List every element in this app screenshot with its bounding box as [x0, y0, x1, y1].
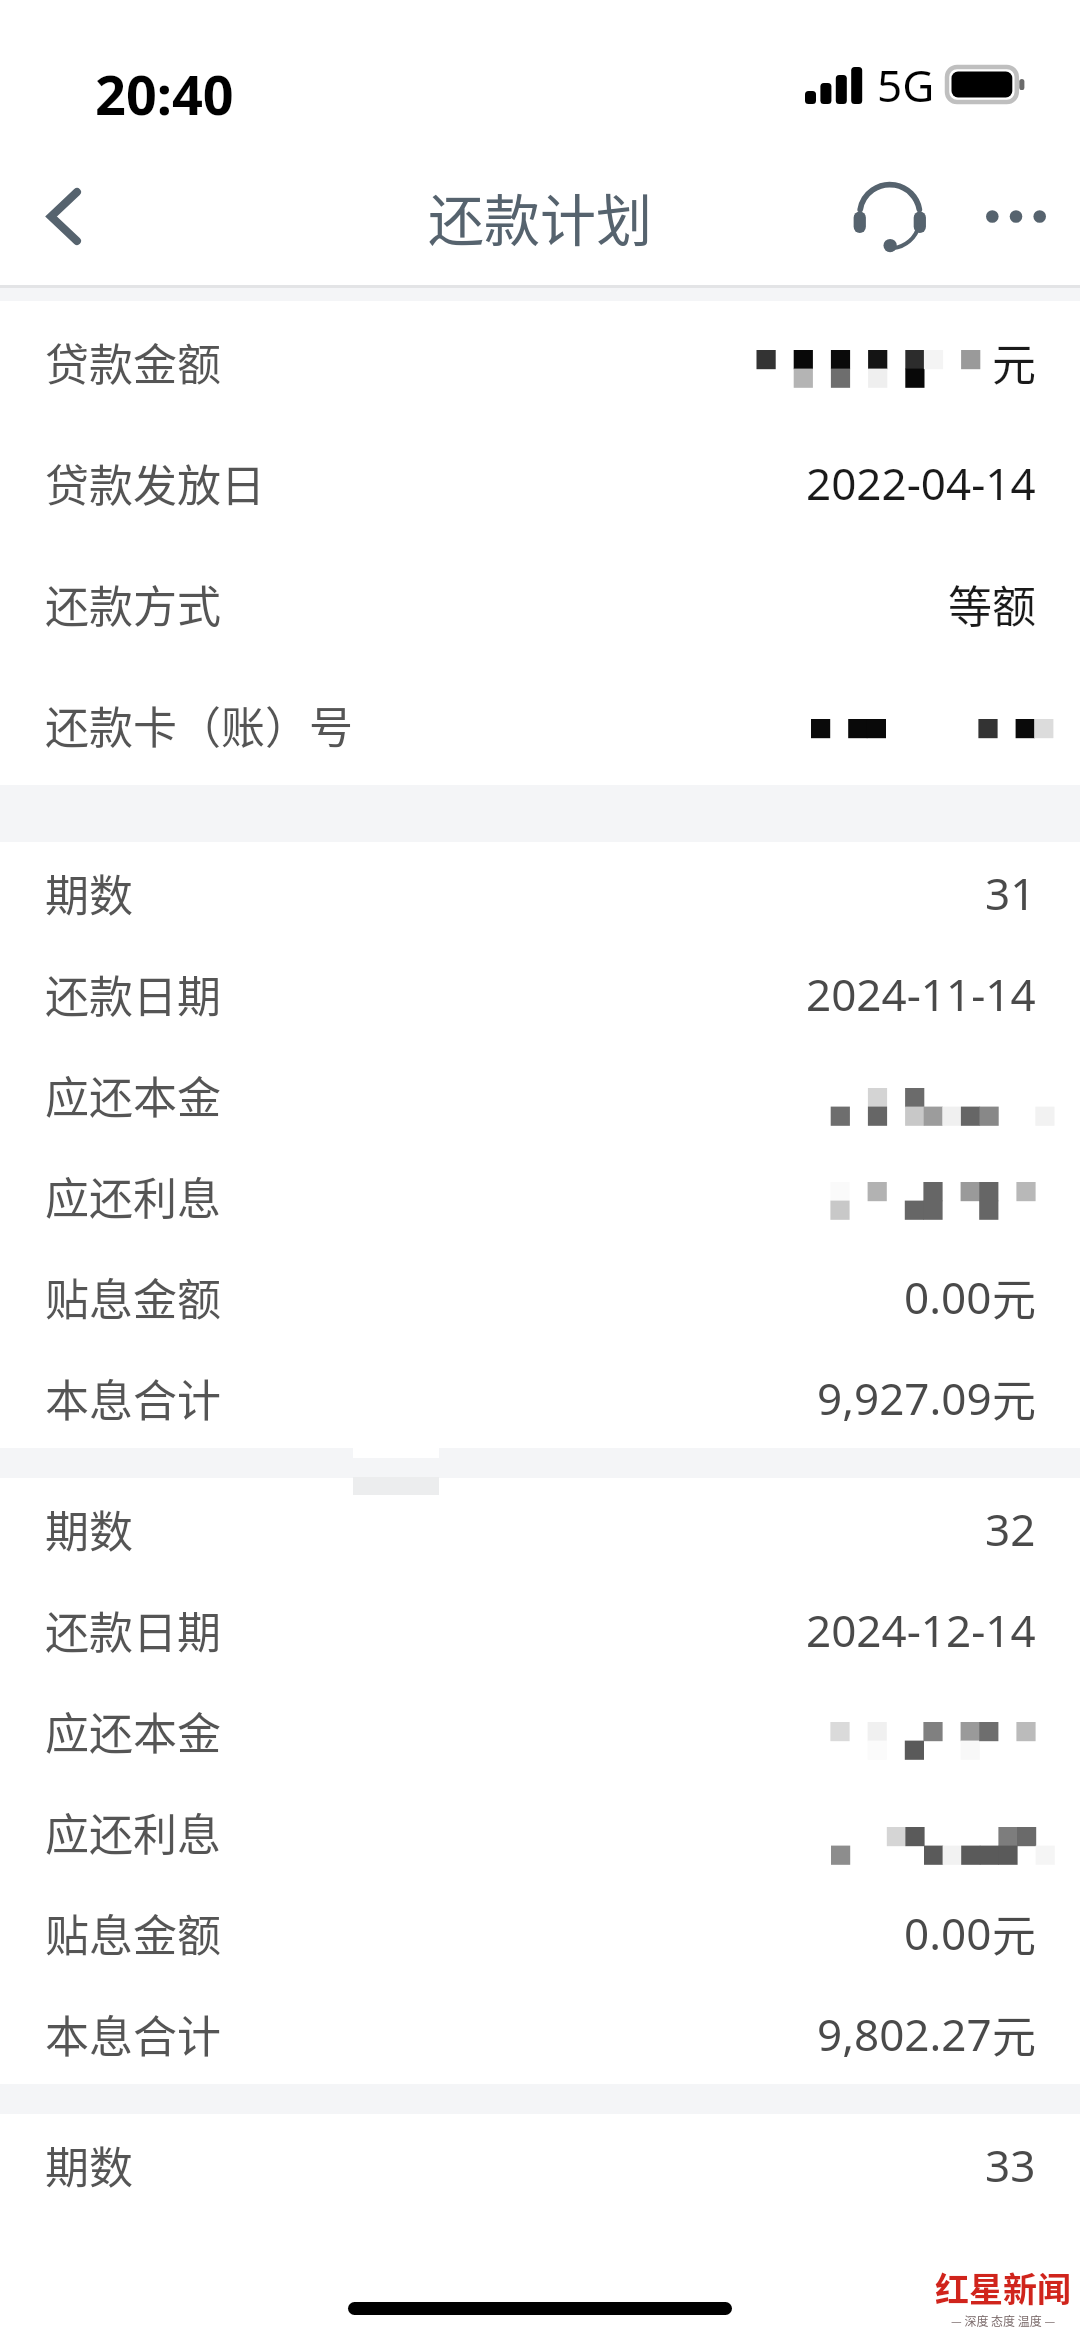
button[interactable]: 期数	[0, 842, 1080, 943]
staticText: 贴息金额	[45, 1265, 221, 1329]
button[interactable]: 贴息金额	[0, 1882, 1080, 1983]
button[interactable]: More options	[962, 150, 1070, 283]
button[interactable]: Back	[0, 150, 128, 283]
staticText: 还款日期	[45, 1598, 221, 1662]
staticText: 还款卡（账）号	[45, 693, 353, 757]
staticText: 期数	[45, 1497, 133, 1561]
staticText: 应还利息	[45, 1164, 221, 1228]
staticText: 31	[985, 863, 1036, 923]
staticText: 贴息金额	[45, 1901, 221, 1965]
button[interactable]: 应还利息	[0, 1781, 1080, 1882]
staticText: 元	[992, 330, 1036, 394]
staticText: 元	[992, 1265, 1036, 1329]
staticText: 应还本金	[45, 1063, 221, 1127]
staticText: 33	[985, 2135, 1036, 2195]
staticText: 2024-11-14	[806, 964, 1036, 1024]
staticText: 还款计划	[428, 176, 652, 257]
staticText: 元	[992, 1901, 1036, 1965]
staticText: 红星新闻	[935, 2263, 1071, 2312]
staticText: 0.00	[904, 1903, 992, 1963]
button[interactable]: 还款卡（账）号	[0, 664, 1080, 785]
staticText: 还款日期	[45, 962, 221, 1026]
button[interactable]: 贷款发放日	[0, 422, 1080, 543]
button[interactable]: 应还本金	[0, 1680, 1080, 1781]
button[interactable]: 本息合计	[0, 1347, 1080, 1448]
button[interactable]: 期数	[0, 2114, 1080, 2215]
staticText: 贷款发放日	[45, 451, 265, 515]
staticText: 贷款金额	[45, 330, 221, 394]
button[interactable]: 期数	[0, 1478, 1080, 1579]
button[interactable]: 应还本金	[0, 1044, 1080, 1145]
button[interactable]: 应还利息	[0, 1145, 1080, 1246]
button[interactable]: Customer service	[832, 150, 948, 283]
staticText: 2022-04-14	[806, 453, 1036, 513]
button[interactable]: 贷款金额	[0, 301, 1080, 422]
staticText: 元	[992, 1366, 1036, 1430]
staticText: — 深度 态度 温度 —	[951, 2312, 1056, 2329]
staticText: 32	[985, 1499, 1036, 1559]
button[interactable]: 还款方式	[0, 543, 1080, 664]
staticText: 应还本金	[45, 1699, 221, 1763]
staticText: 9,927.09	[817, 1368, 992, 1428]
staticText: 元	[992, 2002, 1036, 2066]
staticText: 0.00	[904, 1267, 992, 1327]
staticText: 还款方式	[45, 572, 221, 636]
staticText: 本息合计	[45, 2002, 221, 2066]
staticText: 20:40	[95, 57, 234, 131]
button[interactable]: 本息合计	[0, 1983, 1080, 2084]
staticText: 2024-12-14	[806, 1600, 1036, 1660]
staticText: 期数	[45, 861, 133, 925]
staticText: 期数	[45, 2133, 133, 2197]
staticText: 等额	[948, 572, 1036, 636]
button[interactable]: 还款日期	[0, 1579, 1080, 1680]
button[interactable]: 贴息金额	[0, 1246, 1080, 1347]
staticText: 5G	[877, 55, 935, 115]
staticText: 9,802.27	[817, 2004, 992, 2064]
staticText: 本息合计	[45, 1366, 221, 1430]
staticText: 应还利息	[45, 1800, 221, 1864]
button[interactable]: 还款日期	[0, 943, 1080, 1044]
